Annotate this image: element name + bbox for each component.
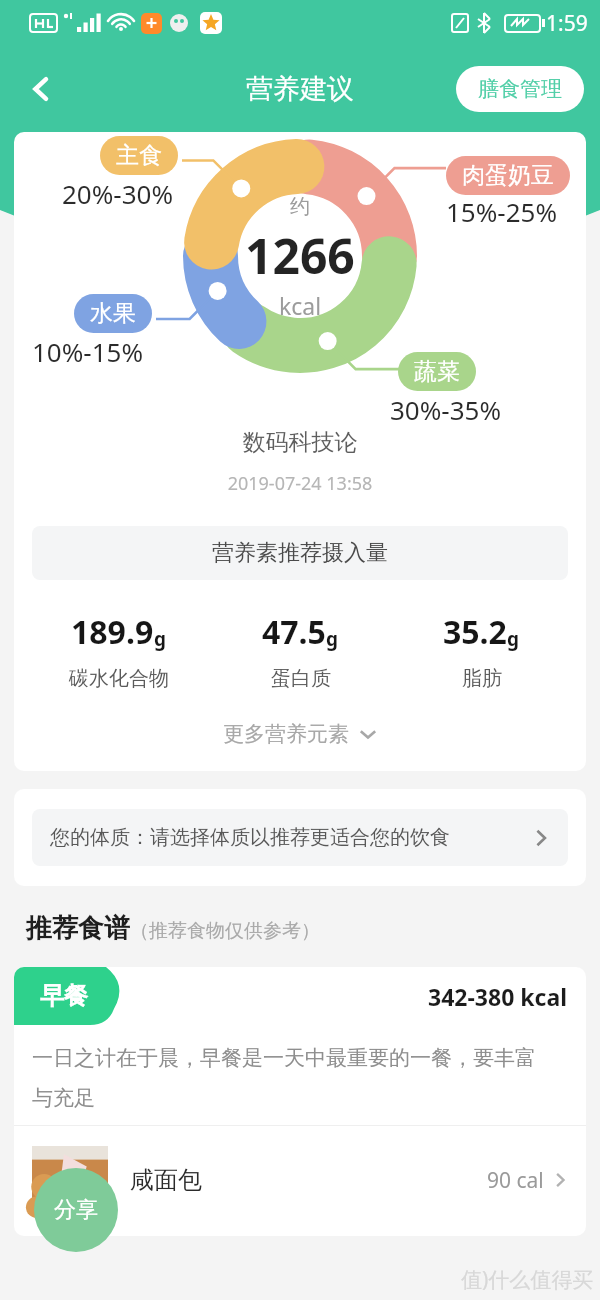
staticText: 1266 (245, 223, 355, 288)
staticText: 30%-35% (390, 392, 502, 427)
staticText: 蛋白质 (271, 666, 331, 691)
button[interactable]: Back (12, 60, 70, 118)
staticText: 值)什么值得买 (461, 1265, 594, 1294)
staticText: 20%-30% (62, 176, 174, 211)
staticText: g (326, 626, 339, 652)
button[interactable]: 您的体质：请选择体质以推荐更适合您的饮食 (32, 809, 568, 866)
button[interactable]: 肉蛋奶豆 (446, 156, 570, 195)
staticText: 推荐食谱 (26, 912, 130, 945)
button[interactable]: 早餐 (14, 967, 586, 1236)
staticText: 分享 (54, 1196, 98, 1224)
staticText: 营养素推荐摄入量 (32, 539, 568, 567)
button[interactable]: 蔬菜 (398, 352, 476, 391)
staticText: 咸面包 (130, 1165, 202, 1195)
staticText: 10%-15% (32, 334, 144, 369)
staticText: 189.9 (71, 610, 154, 654)
button[interactable]: 更多营养元素 (14, 715, 586, 753)
staticText: 35.2 (443, 610, 507, 654)
button[interactable]: 水果 (74, 294, 152, 333)
staticText: 一日之计在于晨，早餐是一天中最重要的一餐，要丰富 与充足 (32, 1045, 568, 1111)
button[interactable]: 膳食管理 (456, 66, 584, 112)
staticText: （推荐食物仅供参考） (130, 919, 320, 943)
staticText: 47.5 (262, 610, 326, 654)
button[interactable]: 主食 (100, 136, 178, 175)
staticText: 蔬菜 (414, 357, 460, 386)
staticText: 碳水化合物 (69, 666, 169, 691)
staticText: 您的体质：请选择体质以推荐更适合您的饮食 (50, 825, 532, 850)
staticText: 2019-07-24 13:58 (14, 471, 586, 496)
staticText: 水果 (90, 299, 136, 328)
staticText: 更多营养元素 (223, 721, 349, 747)
staticText: kcal (279, 290, 322, 321)
staticText: 1:59 (546, 9, 588, 38)
staticText: 342-380 kcal (428, 981, 568, 1012)
staticText: 15%-25% (446, 194, 558, 229)
staticText: 营养建议 (246, 72, 354, 106)
staticText: 90 cal (487, 1166, 544, 1195)
staticText: 早餐 (40, 981, 88, 1011)
staticText: g (154, 626, 167, 652)
staticText: 数码科技论 (14, 428, 586, 457)
staticText: g (507, 626, 520, 652)
staticText: 脂肪 (462, 666, 502, 691)
staticText: 膳食管理 (478, 76, 562, 102)
staticText: 肉蛋奶豆 (462, 161, 554, 190)
button[interactable]: Share (34, 1168, 118, 1252)
staticText: 约 (290, 194, 310, 219)
staticText: 主食 (116, 141, 162, 170)
